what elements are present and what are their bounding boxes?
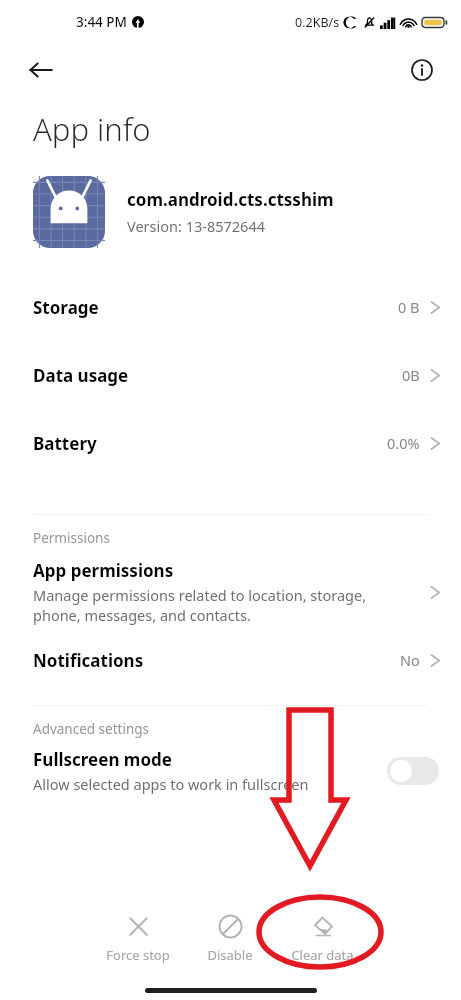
staticText: App info: [33, 108, 151, 150]
staticText: Data usage: [33, 364, 129, 387]
staticText: Manage permissions related to location, …: [33, 585, 367, 625]
staticText: Allow selected apps to work in fullscree…: [33, 774, 309, 794]
button[interactable]: Notifications: [0, 641, 461, 679]
button[interactable]: Fullscreen mode: [0, 748, 461, 794]
button[interactable]: Fullscreen mode toggle: [387, 757, 439, 785]
staticText: Disable: [207, 946, 253, 964]
staticText: Version: 13-8572644: [127, 216, 265, 236]
staticText: 0.2KB/s: [295, 14, 340, 31]
staticText: No: [400, 650, 420, 670]
staticText: 0 B: [398, 297, 420, 317]
staticText: Advanced settings: [33, 720, 150, 738]
button[interactable]: Storage: [0, 284, 461, 330]
staticText: 0.0%: [387, 433, 420, 453]
staticText: Clear data: [291, 946, 354, 964]
staticText: com.android.cts.ctsshim: [127, 188, 334, 211]
staticText: 0B: [402, 365, 420, 385]
staticText: App permissions: [33, 559, 174, 582]
staticText: Force stop: [106, 946, 170, 964]
button[interactable]: App details info: [401, 49, 443, 91]
staticText: Fullscreen mode: [33, 748, 172, 771]
staticText: 3:44 PM: [76, 13, 127, 31]
staticText: Battery: [33, 432, 97, 455]
staticText: Permissions: [33, 529, 110, 547]
staticText: Storage: [33, 296, 99, 319]
button[interactable]: Battery: [0, 420, 461, 466]
button[interactable]: Clear data: [280, 910, 364, 968]
button[interactable]: Force stop: [96, 910, 180, 968]
button[interactable]: Data usage: [0, 352, 461, 398]
staticText: Notifications: [33, 649, 144, 672]
button[interactable]: Back: [20, 49, 62, 91]
button[interactable]: App permissions: [0, 557, 461, 627]
button[interactable]: Disable: [188, 910, 272, 968]
